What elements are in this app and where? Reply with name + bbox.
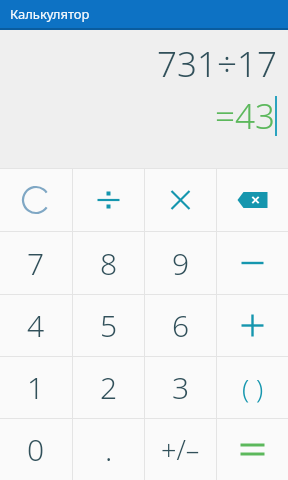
staticText: 0	[27, 429, 45, 470]
staticText: ( )	[242, 370, 264, 405]
button[interactable]: 7	[0, 232, 72, 294]
button[interactable]: 2	[73, 357, 144, 418]
staticText: =43	[215, 92, 275, 140]
button[interactable]: 0	[0, 419, 72, 480]
button[interactable]: Backspace	[217, 169, 288, 231]
staticText: 8	[100, 243, 118, 284]
button[interactable]: 9	[145, 232, 216, 294]
staticText: 731÷17	[157, 40, 277, 88]
staticText: 1	[27, 367, 45, 408]
button[interactable]: Clear	[0, 169, 72, 231]
staticText: 2	[100, 367, 118, 408]
button[interactable]: 8	[73, 232, 144, 294]
staticText: 5	[100, 305, 118, 346]
staticText: 4	[27, 305, 45, 346]
staticText: Калькулятор	[10, 5, 90, 23]
button[interactable]: 6	[145, 295, 216, 356]
staticText: .	[105, 429, 113, 470]
button[interactable]: 3	[145, 357, 216, 418]
button[interactable]: 4	[0, 295, 72, 356]
button[interactable]: ( )	[217, 357, 288, 418]
button[interactable]: 1	[0, 357, 72, 418]
button[interactable]: 5	[73, 295, 144, 356]
button[interactable]: +/–	[145, 419, 216, 480]
button[interactable]: Divide	[73, 169, 144, 231]
staticText: 3	[172, 367, 190, 408]
staticText: 7	[27, 243, 45, 284]
button[interactable]: Equals	[217, 419, 288, 480]
button[interactable]: Plus	[217, 295, 288, 356]
button[interactable]: .	[73, 419, 144, 480]
button[interactable]: Multiply	[145, 169, 216, 231]
staticText: +/–	[161, 431, 200, 468]
staticText: 6	[172, 305, 190, 346]
button[interactable]: Minus	[217, 232, 288, 294]
staticText: 9	[172, 243, 190, 284]
